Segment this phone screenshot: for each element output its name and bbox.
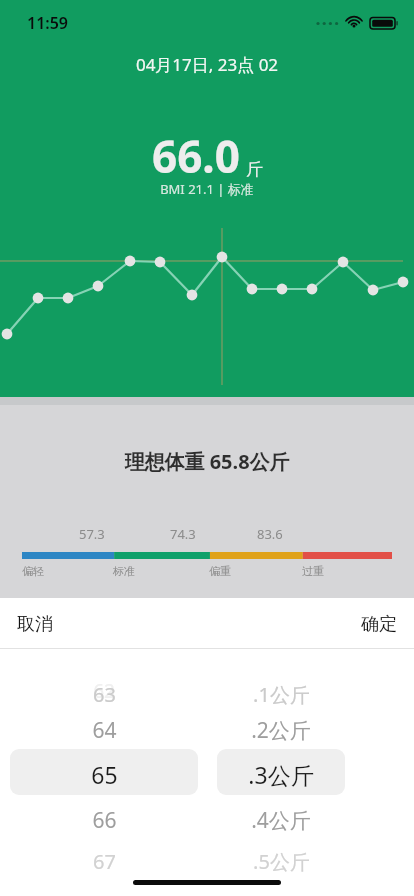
staticText: .2公斤: [251, 716, 311, 745]
staticText: 斤: [246, 159, 263, 180]
staticText: .5公斤: [253, 848, 310, 875]
button[interactable]: [10, 749, 198, 795]
button[interactable]: 66: [10, 806, 198, 835]
staticText: 62: [93, 678, 115, 704]
staticText: 理想体重 65.8公斤: [0, 448, 414, 475]
staticText: 取消: [17, 613, 53, 636]
button[interactable]: .1公斤: [217, 681, 345, 708]
staticText: 57.3: [79, 525, 105, 543]
button[interactable]: 67: [10, 848, 198, 875]
staticText: 04月17日, 23点 02: [0, 53, 414, 76]
staticText: 74.3: [170, 525, 196, 543]
button[interactable]: .5公斤: [217, 848, 345, 875]
staticText: 64: [92, 716, 117, 745]
staticText: .3公斤: [248, 759, 314, 790]
button[interactable]: 确定: [356, 607, 402, 642]
staticText: 63: [93, 681, 116, 708]
staticText: 65: [91, 759, 118, 790]
button[interactable]: .4公斤: [217, 806, 345, 835]
staticText: 83.6: [257, 525, 283, 543]
button[interactable]: 65: [10, 759, 198, 790]
staticText: 66: [92, 806, 117, 835]
staticText: .4公斤: [251, 806, 311, 835]
button[interactable]: 62: [10, 678, 198, 704]
button[interactable]: [217, 749, 345, 795]
staticText: 66.0: [152, 126, 240, 186]
button[interactable]: 63: [10, 681, 198, 708]
staticText: 偏轻: [22, 564, 44, 578]
staticText: 67: [93, 848, 116, 875]
button[interactable]: 64: [10, 716, 198, 745]
button[interactable]: .2公斤: [217, 716, 345, 745]
other: Home indicator: [133, 880, 281, 885]
staticText: .1公斤: [253, 681, 310, 708]
staticText: BMI 21.1 | 标准: [0, 180, 414, 198]
staticText: 标准: [113, 564, 135, 578]
button[interactable]: .3公斤: [217, 759, 345, 790]
staticText: 偏重: [209, 564, 231, 578]
staticText: 确定: [361, 613, 397, 636]
button[interactable]: 取消: [12, 607, 58, 642]
staticText: 过重: [302, 564, 324, 578]
staticText: 11:59: [27, 12, 69, 34]
